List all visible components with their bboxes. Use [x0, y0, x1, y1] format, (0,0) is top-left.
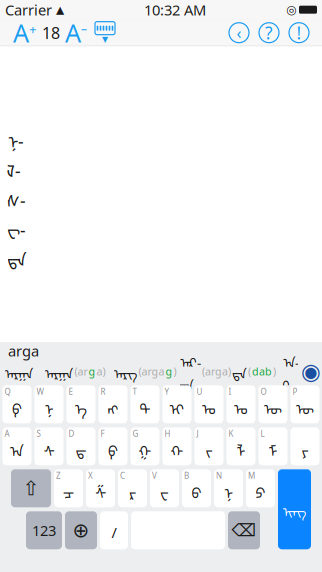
button[interactable]: H	[162, 427, 191, 465]
staticText: ᠵ	[205, 436, 212, 461]
button[interactable]: ᠠᠷᠭᠠ	[40, 360, 110, 382]
staticText: X	[88, 470, 93, 481]
button[interactable]: W	[34, 385, 63, 423]
staticText: E	[68, 386, 72, 397]
button[interactable]: N	[214, 469, 243, 507]
button[interactable]: E	[66, 385, 95, 423]
button[interactable]: Numbers	[26, 511, 62, 549]
button[interactable]: T	[130, 385, 159, 423]
button[interactable]: G	[130, 427, 159, 465]
button[interactable]: J	[194, 427, 223, 465]
staticText: ᠳᠠ	[232, 360, 247, 383]
staticText: ᠢᠨᠭ	[282, 498, 306, 521]
staticText: M	[248, 470, 255, 481]
staticText: B	[184, 470, 189, 481]
staticText: J	[196, 428, 198, 439]
staticText: L	[260, 428, 264, 439]
staticText: ᠲ	[139, 394, 150, 419]
staticText: O	[260, 386, 266, 397]
button[interactable]: Delete	[228, 511, 260, 549]
button[interactable]: Decrease font size	[62, 20, 90, 46]
button[interactable]: Hide keyboard	[90, 20, 120, 46]
staticText: ᠠᠷ	[283, 349, 299, 394]
button[interactable]: key	[290, 427, 319, 465]
staticText: ᠱ	[95, 478, 106, 503]
button[interactable]: V	[150, 469, 179, 507]
staticText: Z	[56, 470, 61, 481]
button[interactable]: ᠠᠷᠭ	[110, 360, 180, 382]
button[interactable]: Return	[278, 469, 311, 549]
button[interactable]: R	[98, 385, 127, 423]
button[interactable]: I	[226, 385, 255, 423]
staticText: K	[228, 428, 233, 439]
staticText: ᠹ	[108, 436, 118, 461]
staticText: A	[65, 16, 81, 49]
button[interactable]: Q	[2, 385, 31, 423]
staticText: +	[29, 20, 37, 38]
staticText: A	[4, 428, 9, 439]
staticText: a)	[96, 364, 105, 378]
staticText: ᠠᠷᠭ	[113, 360, 137, 383]
staticText: ᠪ	[191, 478, 201, 503]
staticText: /	[111, 523, 116, 542]
staticText: ‹	[236, 22, 241, 43]
staticText: (arga)	[202, 364, 231, 378]
button[interactable]: key	[100, 511, 128, 549]
button[interactable]: A	[2, 427, 31, 465]
button[interactable]: P	[290, 385, 319, 423]
staticText: ᠠᠷᠭᠠ	[4, 360, 33, 383]
staticText: ᠴ	[63, 478, 74, 503]
staticText: ᠭ	[138, 436, 151, 461]
button[interactable]: Y	[162, 385, 191, 423]
button[interactable]: Z	[54, 469, 83, 507]
staticText: ᠬ	[170, 436, 183, 461]
button[interactable]: S	[34, 427, 63, 465]
staticText: G	[132, 428, 138, 439]
staticText: )	[273, 364, 276, 378]
button[interactable]: Next keyboard	[65, 511, 97, 549]
staticText: ᠩ	[107, 394, 118, 419]
button[interactable]: Increase font size	[10, 20, 40, 46]
staticText: !	[296, 21, 301, 44]
button[interactable]: Help	[254, 20, 284, 46]
button[interactable]: L	[258, 427, 287, 465]
staticText: g	[165, 364, 172, 378]
button[interactable]: X	[86, 469, 115, 507]
button[interactable]: K	[226, 427, 255, 465]
button[interactable]: D	[66, 427, 95, 465]
button[interactable]: Shift	[11, 469, 51, 507]
staticText: P	[292, 386, 297, 397]
staticText: ⊕	[72, 519, 89, 542]
staticText: ᠶ	[301, 436, 308, 461]
button[interactable]: B	[182, 469, 211, 507]
staticText: ᠣ	[202, 394, 216, 419]
button[interactable]: O	[258, 385, 287, 423]
staticText: W	[36, 386, 43, 397]
staticText: ᠡ	[75, 394, 87, 419]
staticText	[296, 2, 299, 18]
staticText: )	[173, 364, 176, 378]
staticText: ᠢ	[169, 394, 184, 419]
staticText: ▼	[102, 35, 108, 44]
button[interactable]: M	[246, 469, 275, 507]
staticText: ᠨᠯᠰᠧᠳᠠ	[8, 123, 26, 271]
staticText: H	[164, 428, 170, 439]
staticText: ⇧	[22, 477, 39, 500]
staticText: (	[248, 364, 251, 378]
staticText: S	[36, 428, 40, 439]
button[interactable]: C	[118, 469, 147, 507]
button[interactable]: Input method options	[298, 359, 322, 383]
staticText: ⌫	[231, 520, 256, 540]
staticText: N	[216, 470, 222, 481]
button[interactable]: F	[98, 427, 127, 465]
button[interactable]: ᠠᠷᠭᠠ	[180, 360, 276, 382]
button[interactable]: Info	[284, 20, 314, 46]
button[interactable]: ᠠᠷᠭᠠ	[0, 360, 40, 382]
button[interactable]: U	[194, 385, 223, 423]
staticText: ᠥ	[264, 394, 282, 419]
button[interactable]: Share	[224, 20, 254, 46]
staticText: ᠳ	[75, 436, 86, 461]
staticText: ᠠᠷᠭᠠ	[180, 349, 201, 394]
staticText: A	[13, 16, 29, 49]
